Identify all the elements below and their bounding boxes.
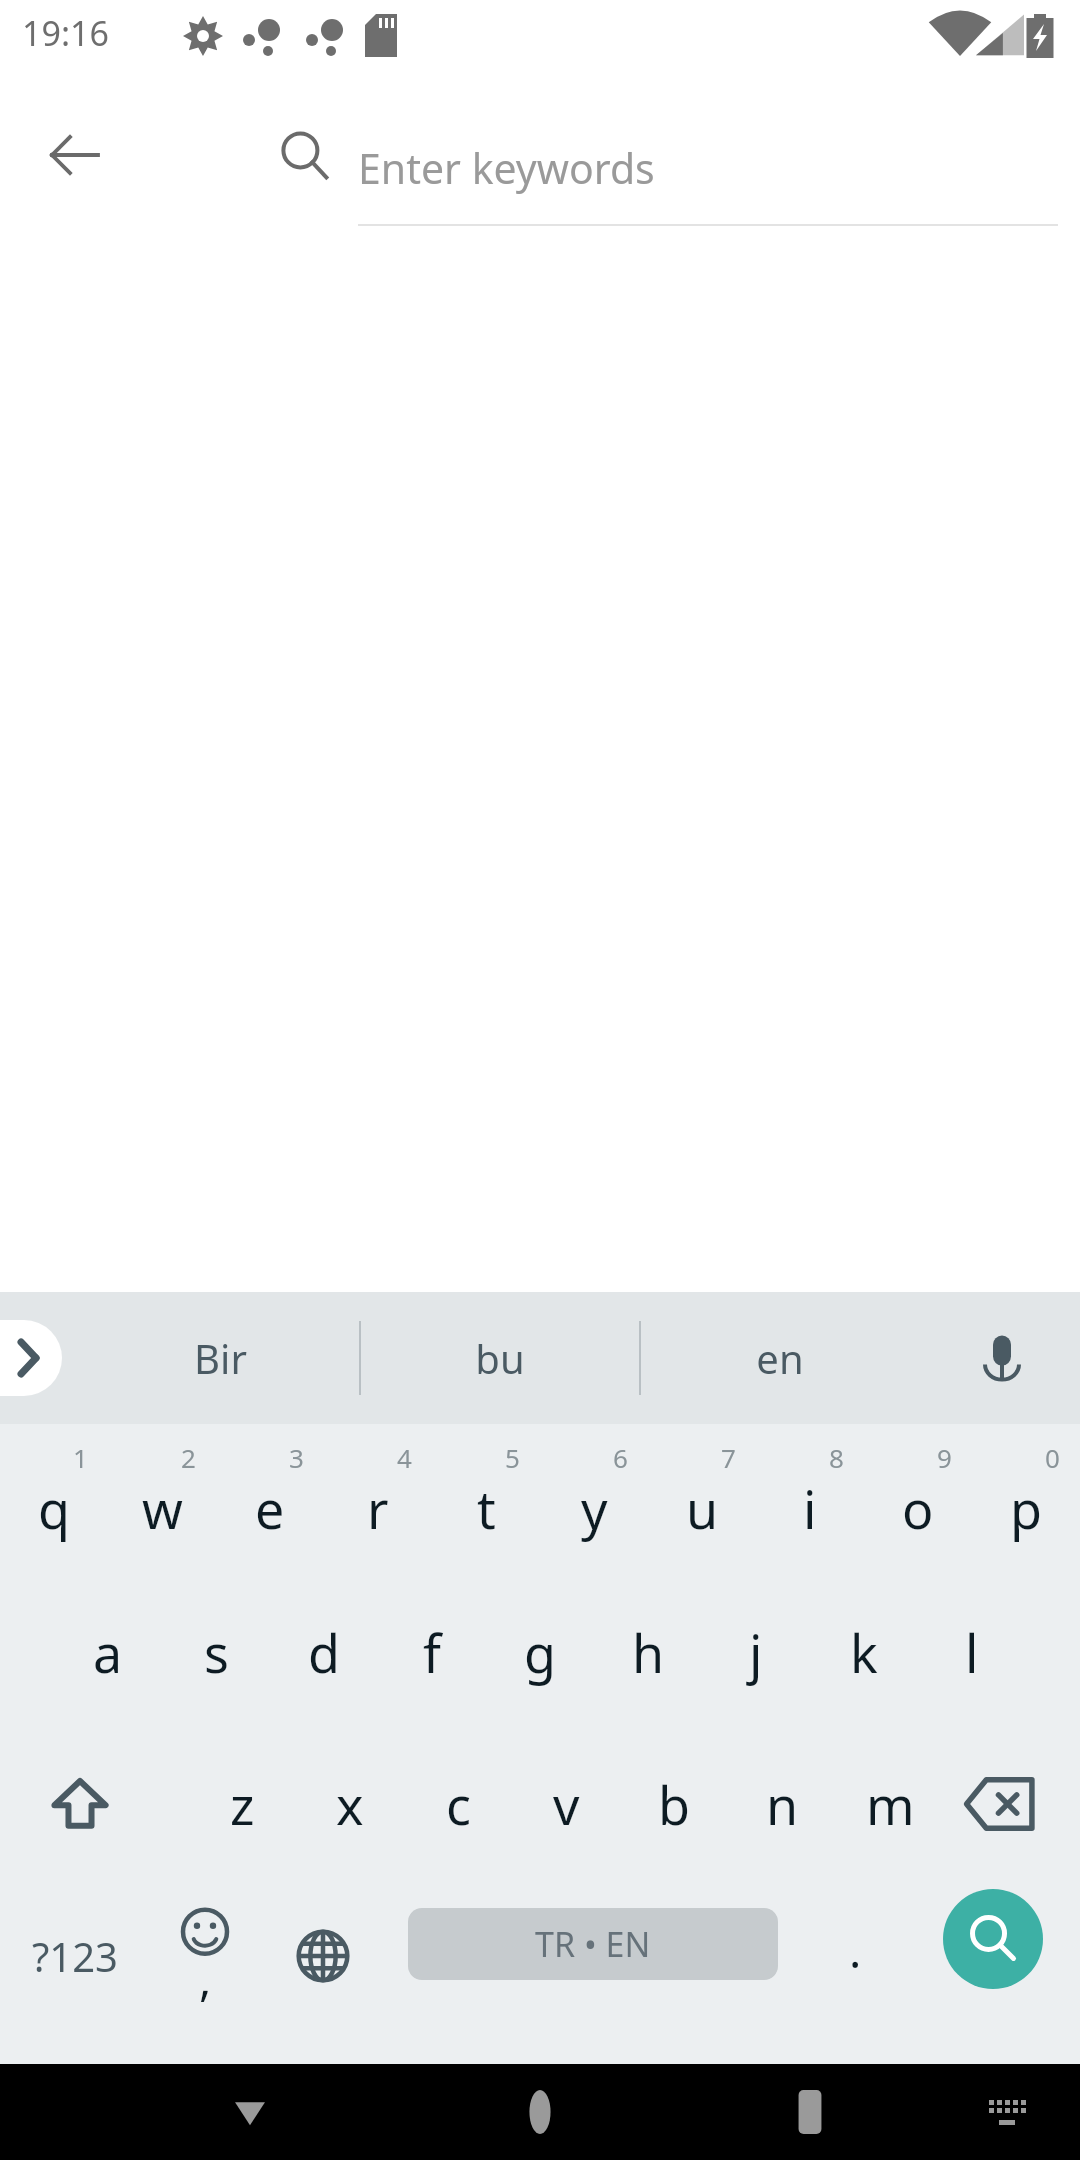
staticText: b [658,1769,690,1840]
button[interactable]: u [648,1424,756,1576]
button[interactable]: n [728,1728,836,1880]
button[interactable]: h [594,1576,702,1728]
staticText: Bir [194,1331,247,1385]
staticText: 2 [181,1440,196,1475]
staticText: f [423,1617,441,1688]
button[interactable]: a [54,1576,162,1728]
staticText: ?123 [32,1929,118,1983]
staticText: 19:16 [22,10,109,56]
button[interactable]: p [972,1424,1080,1576]
staticText: 8 [829,1440,844,1475]
button[interactable]: i [756,1424,864,1576]
button[interactable]: Expand toolbar [0,1320,62,1396]
staticText: z [230,1769,255,1840]
staticText: e [255,1473,285,1544]
staticText: 1 [73,1440,88,1475]
button[interactable]: w [108,1424,216,1576]
button[interactable]: q [0,1424,108,1576]
staticText: TR • EN [535,1921,651,1967]
staticText: Enter keywords [358,140,655,196]
staticText: q [38,1473,70,1544]
staticText: 0 [1045,1440,1060,1475]
staticText: o [902,1473,934,1544]
button[interactable]: j [702,1576,810,1728]
staticText: en [756,1331,804,1385]
button[interactable]: Voice input [962,1318,1042,1398]
staticText: bu [475,1331,525,1385]
button[interactable]: bu [360,1292,640,1424]
staticText: n [766,1769,799,1840]
staticText: 9 [937,1440,952,1475]
button[interactable]: d [270,1576,378,1728]
button[interactable]: TR • EN [408,1908,778,1980]
button[interactable]: r [324,1424,432,1576]
button[interactable]: Back [30,110,120,200]
staticText: y [581,1473,608,1544]
button[interactable]: s [162,1576,270,1728]
staticText: t [477,1473,496,1544]
staticText: c [446,1769,471,1840]
button[interactable]: o [864,1424,972,1576]
staticText: , [199,1947,212,2010]
staticText: m [866,1769,915,1840]
staticText: l [965,1617,979,1688]
staticText: v [553,1769,580,1840]
button[interactable]: Backspace [920,1728,1080,1880]
button[interactable]: Hide keyboard [220,2082,280,2142]
button[interactable]: k [810,1576,918,1728]
staticText: . [849,1919,862,1982]
button[interactable]: Enter keywords [358,110,1058,226]
button[interactable]: b [620,1728,728,1880]
button[interactable]: Switch keyboard [975,2086,1035,2146]
button[interactable]: . [800,1880,910,2032]
staticText: r [367,1473,389,1544]
staticText: 3 [289,1440,304,1475]
button[interactable]: c [404,1728,512,1880]
button[interactable]: e [216,1424,324,1576]
button[interactable]: m [836,1728,944,1880]
staticText: 5 [505,1440,520,1475]
staticText: 4 [397,1440,412,1475]
button[interactable]: x [296,1728,404,1880]
button[interactable]: g [486,1576,594,1728]
staticText: h [632,1617,665,1688]
button[interactable]: v [512,1728,620,1880]
button[interactable]: t [432,1424,540,1576]
button[interactable]: Search [943,1889,1043,1989]
staticText: u [686,1473,719,1544]
button[interactable]: Change language [268,1880,378,2032]
button[interactable]: z [188,1728,296,1880]
button[interactable]: Bir [80,1292,360,1424]
button[interactable]: Emoji [150,1880,260,2032]
button[interactable]: f [378,1576,486,1728]
button[interactable]: Shift [0,1728,160,1880]
staticText: 7 [721,1440,736,1475]
button[interactable]: l [918,1576,1026,1728]
staticText: a [93,1617,123,1688]
staticText: k [850,1617,878,1688]
staticText: i [803,1473,817,1544]
button[interactable]: y [540,1424,648,1576]
staticText: g [524,1617,556,1688]
staticText: p [1010,1473,1042,1544]
staticText: s [204,1617,229,1688]
staticText: x [336,1769,364,1840]
staticText: w [142,1473,183,1544]
staticText: d [308,1617,340,1688]
button[interactable]: Recent apps [780,2082,840,2142]
button[interactable]: Home [510,2082,570,2142]
button[interactable]: ?123 [0,1880,150,2032]
staticText: j [749,1617,763,1688]
button[interactable]: en [640,1292,920,1424]
staticText: 6 [613,1440,628,1475]
